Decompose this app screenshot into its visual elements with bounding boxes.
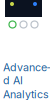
staticText: Analytics: [3, 88, 49, 100]
staticText: Advanced AI: [3, 61, 50, 87]
